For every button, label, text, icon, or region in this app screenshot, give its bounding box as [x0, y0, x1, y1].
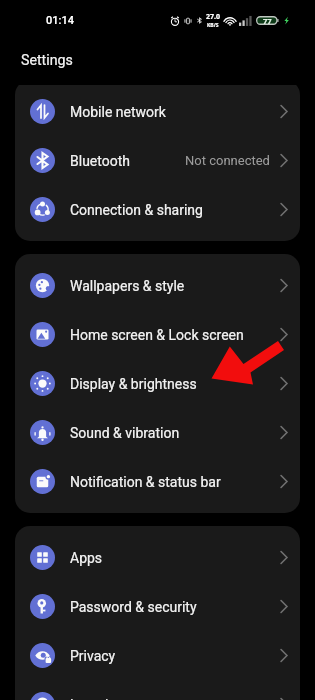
- staticText: 27.0: [206, 12, 220, 22]
- other: Apps: [30, 545, 55, 570]
- other: Password and security: [30, 594, 55, 619]
- button[interactable]: Wallpapers and style: [15, 261, 300, 310]
- button[interactable]: Connection and sharing: [15, 185, 300, 234]
- other: Mobile network: [30, 99, 55, 124]
- staticText: KB/S: [207, 22, 219, 29]
- other: Bluetooth: [30, 148, 55, 173]
- staticText: Mobile network: [70, 104, 166, 120]
- staticText: Home screen & Lock screen: [70, 327, 244, 343]
- other: Location: [30, 692, 55, 700]
- staticText: 01:14: [46, 14, 74, 27]
- button[interactable]: Sound and vibration: [15, 408, 300, 457]
- other: Connection and sharing: [30, 197, 55, 222]
- button[interactable]: Notification and status bar: [15, 457, 300, 506]
- button[interactable]: Mobile network: [15, 87, 300, 136]
- other: Wallpapers and style: [30, 273, 55, 298]
- staticText: Sound & vibration: [70, 425, 180, 441]
- other: Sound and vibration: [30, 420, 55, 445]
- staticText: Notification & status bar: [70, 474, 221, 490]
- other: Display and brightness: [30, 371, 55, 396]
- staticText: Location: [70, 697, 125, 700]
- staticText: Display & brightness: [70, 376, 197, 392]
- button[interactable]: Password and security: [15, 582, 300, 631]
- staticText: Settings: [21, 52, 73, 69]
- button[interactable]: Home screen and Lock screen: [15, 310, 300, 359]
- staticText: Connection & sharing: [70, 202, 203, 218]
- button[interactable]: Privacy: [15, 631, 300, 680]
- staticText: Not connected: [185, 153, 270, 168]
- button[interactable]: Bluetooth: [15, 136, 300, 185]
- button[interactable]: Apps: [15, 533, 300, 582]
- other: Privacy: [30, 643, 55, 668]
- staticText: Password & security: [70, 599, 197, 615]
- other: Notification and status bar: [30, 469, 55, 494]
- button[interactable]: Location: [15, 680, 300, 700]
- staticText: Apps: [70, 550, 103, 566]
- staticText: Bluetooth: [70, 153, 130, 169]
- staticText: 77: [263, 16, 272, 26]
- staticText: Wallpapers & style: [70, 278, 185, 294]
- other: Home screen and Lock screen: [30, 322, 55, 347]
- button[interactable]: Display and brightness: [15, 359, 300, 408]
- staticText: Privacy: [70, 648, 116, 664]
